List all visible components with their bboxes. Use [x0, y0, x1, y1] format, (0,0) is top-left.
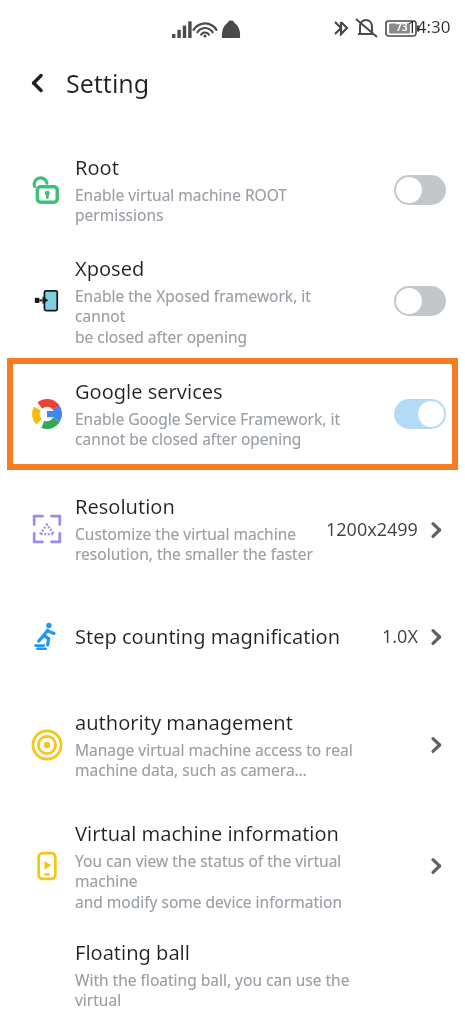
button[interactable]: Step counting magnification: [0, 588, 465, 684]
button[interactable]: Xposed: [0, 244, 465, 358]
staticText: authority management: [75, 709, 293, 736]
button[interactable]: Back: [18, 63, 58, 103]
staticText: Virtual machine information: [75, 820, 339, 847]
staticText: 1.0X: [382, 624, 418, 649]
button[interactable]: Root: [0, 136, 465, 244]
staticText: Resolution: [75, 493, 175, 520]
button[interactable]: Google services: [7, 358, 458, 470]
staticText: Enable virtual machine ROOT permissions: [75, 184, 355, 226]
staticText: 73: [396, 20, 408, 34]
button[interactable]: Off: [394, 175, 446, 205]
staticText: Customize the virtual machine resolution…: [75, 523, 313, 565]
staticText: You can view the status of the virtual m…: [75, 850, 355, 913]
staticText: Xposed: [75, 255, 145, 282]
button[interactable]: Resolution: [0, 470, 465, 588]
staticText: Setting: [66, 66, 150, 100]
button[interactable]: Off: [394, 286, 446, 316]
button[interactable]: authority management: [0, 684, 465, 806]
staticText: 1200x2499: [326, 517, 418, 542]
staticText: Enable the Xposed framework, it cannot b…: [75, 285, 355, 348]
staticText: Floating ball: [75, 939, 190, 966]
staticText: Manage virtual machine access to real ma…: [75, 739, 353, 781]
button[interactable]: Virtual machine information: [0, 806, 465, 926]
staticText: Root: [75, 154, 119, 181]
staticText: Step counting magnification: [75, 623, 341, 650]
staticText: With the floating ball, you can use the …: [75, 969, 355, 1011]
staticText: Enable Google Service Framework, it cann…: [75, 408, 341, 450]
button[interactable]: On: [394, 399, 446, 429]
staticText: 14:30: [407, 15, 451, 38]
staticText: Google services: [75, 378, 223, 405]
button[interactable]: Floating ball: [0, 926, 465, 1024]
